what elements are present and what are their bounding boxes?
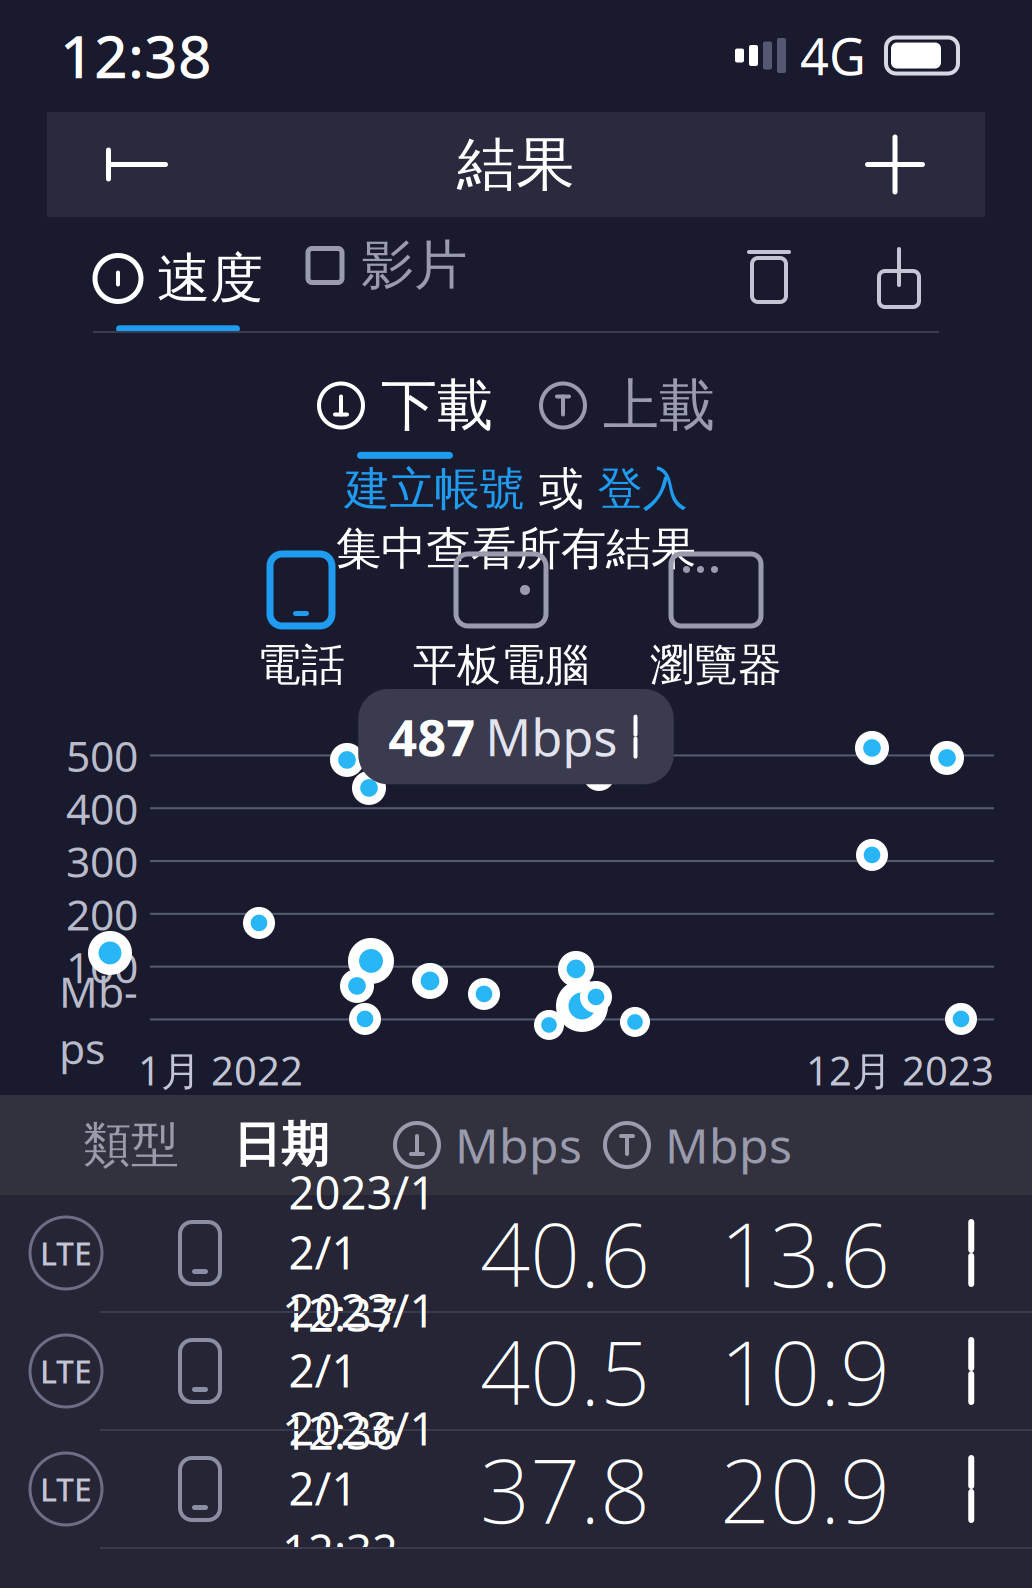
staticText: 1月 2022 bbox=[138, 1043, 303, 1096]
staticText: 影片 bbox=[361, 233, 467, 298]
staticText: 487 bbox=[388, 703, 475, 770]
staticText: 結果 bbox=[457, 128, 575, 201]
staticText: 500 bbox=[66, 727, 138, 784]
staticText: 集中查看所有結果 bbox=[336, 521, 696, 577]
staticText: Mbps bbox=[485, 703, 617, 770]
staticText: 12:37 bbox=[282, 1284, 398, 1344]
staticText: 40.6 bbox=[480, 1195, 650, 1311]
button[interactable]: 上載 bbox=[539, 371, 715, 459]
staticText: 登入 bbox=[597, 461, 687, 517]
button[interactable]: LTE bbox=[0, 1195, 1032, 1311]
staticText: 20.9 bbox=[720, 1431, 890, 1547]
staticText: 上載 bbox=[603, 371, 715, 440]
staticText: 37.8 bbox=[480, 1431, 650, 1547]
staticText: 40.5 bbox=[480, 1313, 650, 1429]
button[interactable]: Share bbox=[859, 236, 939, 316]
staticText: LTE bbox=[40, 1468, 92, 1510]
button[interactable]: 瀏覽器 bbox=[631, 554, 801, 692]
staticText: 建立帳號 bbox=[344, 461, 524, 517]
staticText: 速度 bbox=[157, 246, 263, 311]
button[interactable]: Mbps bbox=[393, 1113, 603, 1177]
button[interactable]: 下載 bbox=[317, 371, 493, 459]
staticText: 13.6 bbox=[720, 1195, 890, 1311]
button[interactable]: 建立帳號 bbox=[344, 461, 524, 517]
button[interactable]: 影片 bbox=[263, 233, 467, 319]
staticText: 12:36 bbox=[282, 1402, 398, 1462]
button[interactable]: LTE bbox=[0, 1311, 1032, 1429]
staticText: 電話 bbox=[257, 638, 345, 692]
staticText: 下載 bbox=[381, 371, 493, 440]
staticText: 12:38 bbox=[60, 16, 212, 94]
button[interactable]: 電話 bbox=[231, 554, 371, 692]
staticText: 300 bbox=[66, 833, 138, 889]
staticText: LTE bbox=[40, 1232, 92, 1274]
staticText: Mbps bbox=[455, 1113, 582, 1177]
staticText: 2023/12/1 bbox=[288, 1280, 435, 1400]
staticText: 100 bbox=[66, 938, 138, 995]
staticText: 10.9 bbox=[720, 1313, 890, 1429]
button[interactable]: 登入 bbox=[597, 461, 687, 517]
staticText: 日期 bbox=[233, 1115, 329, 1174]
button[interactable]: 平板電腦 bbox=[401, 554, 601, 692]
button[interactable]: Mbps bbox=[603, 1113, 813, 1177]
staticText: 12月 2023 bbox=[806, 1043, 994, 1096]
staticText: 瀏覽器 bbox=[650, 638, 782, 692]
button[interactable]: 類型 bbox=[83, 1115, 233, 1174]
staticText: 400 bbox=[66, 780, 138, 837]
staticText: 平板電腦 bbox=[413, 638, 589, 692]
button[interactable]: Close bbox=[805, 112, 985, 217]
staticText: 12:32 bbox=[282, 1520, 398, 1580]
button[interactable]: 487 bbox=[358, 689, 674, 784]
button[interactable]: LTE bbox=[0, 1429, 1032, 1547]
staticText: 或 bbox=[524, 461, 597, 517]
button[interactable]: 速度 bbox=[93, 220, 263, 332]
button[interactable]: Delete bbox=[729, 236, 809, 316]
button[interactable]: 日期 bbox=[233, 1115, 393, 1174]
staticText: 2023/12/1 bbox=[288, 1162, 435, 1282]
staticText: 類型 bbox=[83, 1115, 179, 1174]
staticText: Mbps bbox=[665, 1113, 792, 1177]
staticText: 4G bbox=[800, 22, 866, 89]
staticText: Mbps bbox=[59, 963, 138, 1076]
button[interactable]: Back bbox=[47, 112, 227, 217]
staticText: LTE bbox=[40, 1350, 92, 1392]
staticText: 200 bbox=[66, 885, 138, 942]
staticText: 2023/12/1 bbox=[288, 1398, 435, 1518]
